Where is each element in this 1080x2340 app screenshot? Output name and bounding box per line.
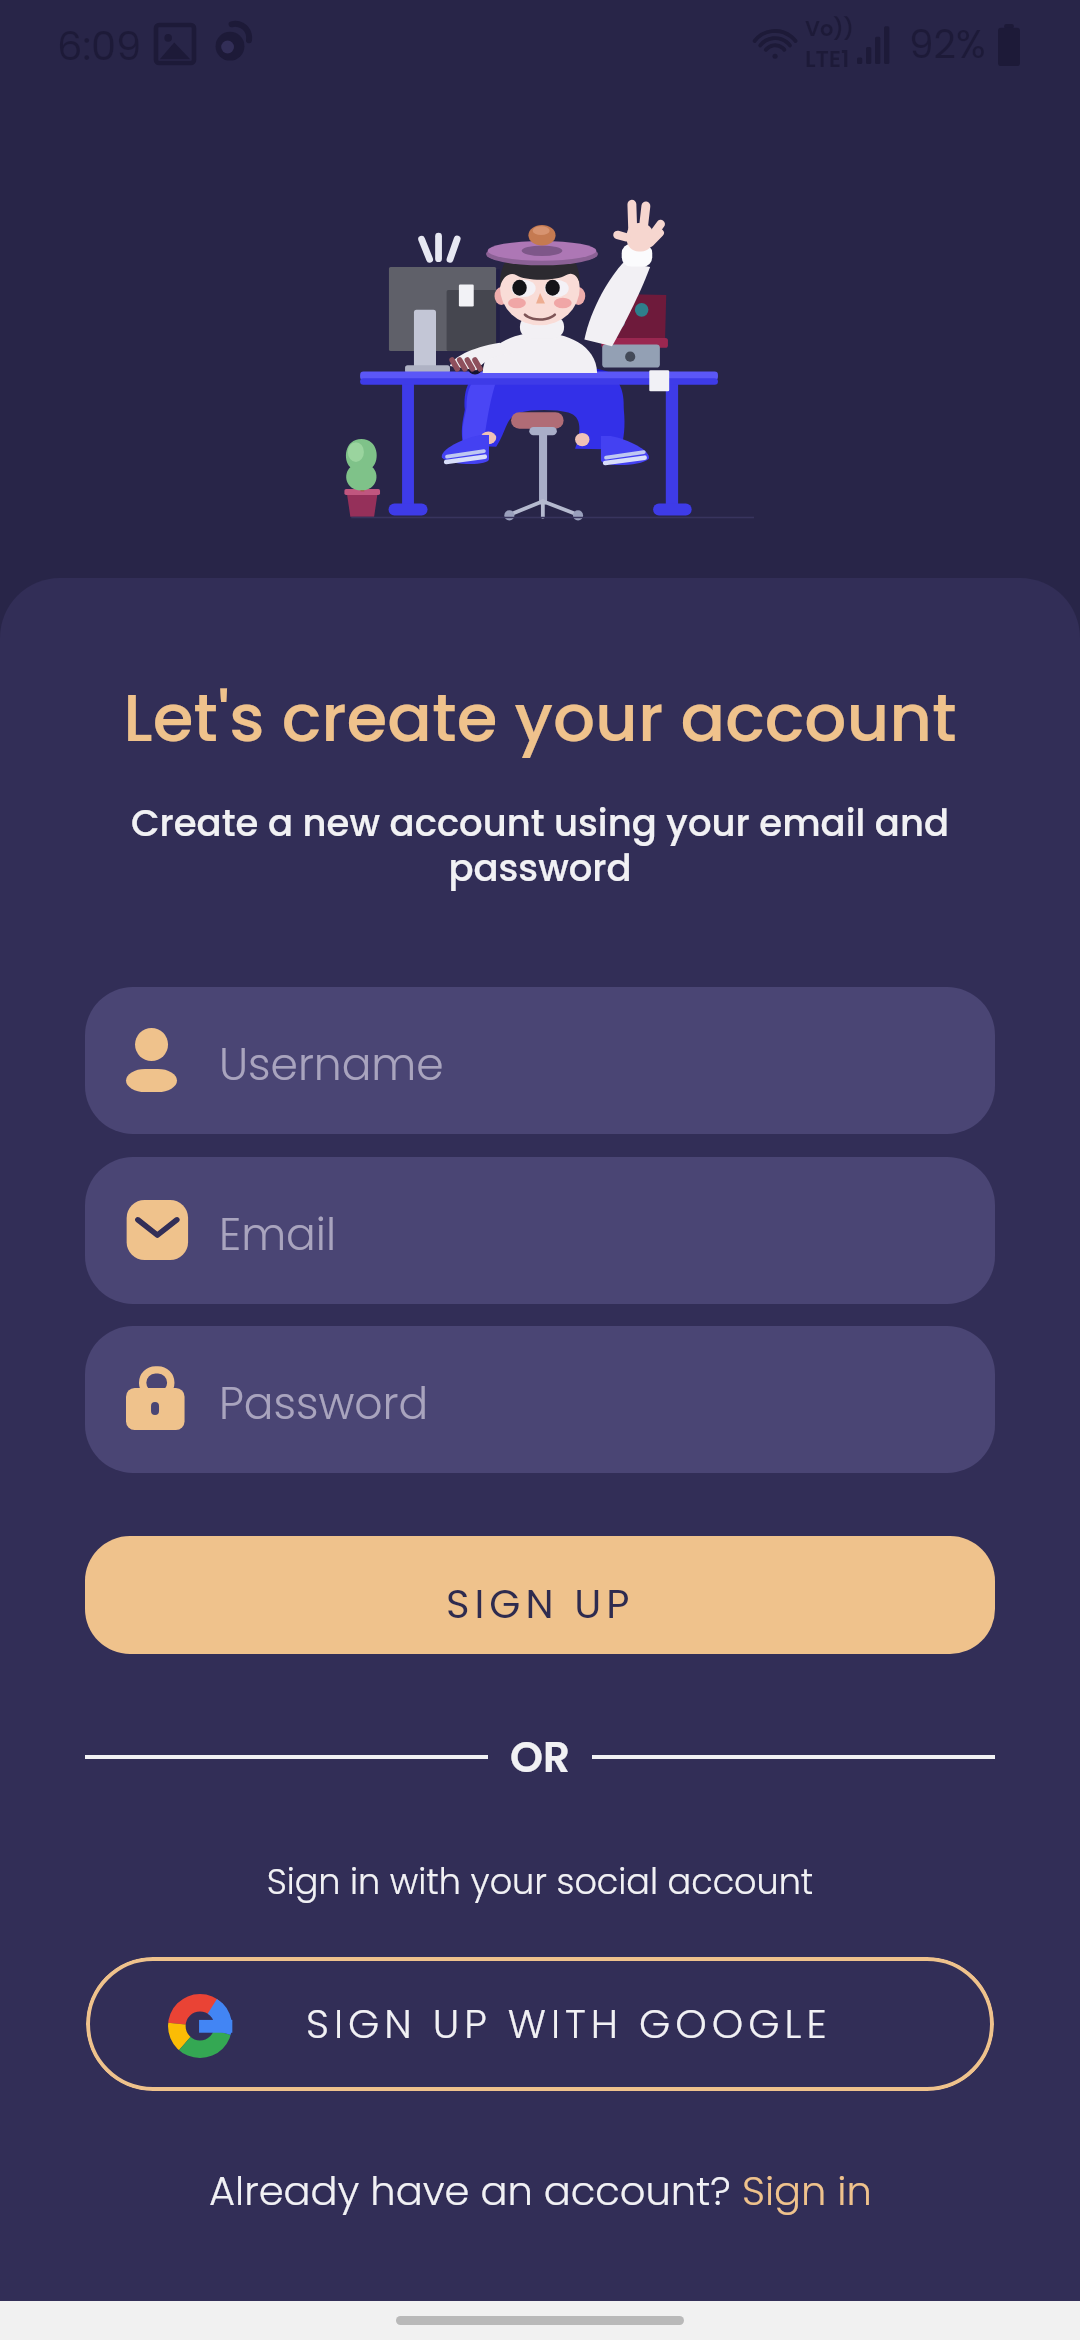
button[interactable]: Email — [85, 1157, 995, 1304]
other: User — [126, 1028, 190, 1092]
staticText: OR — [510, 1728, 570, 1787]
button[interactable]: Sign in — [742, 2163, 872, 2219]
staticText: Let's create your account — [0, 672, 1080, 764]
staticText: SIGN UP — [446, 1576, 635, 1632]
staticText: LTE1 — [805, 43, 850, 75]
staticText: Create a new account using your email an… — [60, 797, 1020, 894]
other: Password — [126, 1367, 190, 1431]
button[interactable]: Password — [85, 1326, 995, 1473]
staticText: Password — [219, 1373, 429, 1435]
button[interactable]: User — [85, 987, 995, 1134]
button[interactable]: Google — [86, 1957, 994, 2091]
staticText: Username — [219, 1034, 444, 1096]
staticText: Email — [219, 1204, 336, 1266]
button[interactable]: SIGN UP — [85, 1536, 995, 1654]
other: Google — [168, 1994, 232, 2058]
other: Email — [126, 1198, 190, 1262]
staticText: 92% — [909, 17, 986, 72]
staticText: SIGN UP WITH GOOGLE — [306, 1996, 832, 2052]
staticText: 6:09 — [57, 18, 142, 74]
staticText: Already have an account? — [209, 2163, 742, 2219]
staticText: Sign in with your social account — [0, 1857, 1080, 1906]
staticText: Vo)) — [805, 14, 854, 43]
